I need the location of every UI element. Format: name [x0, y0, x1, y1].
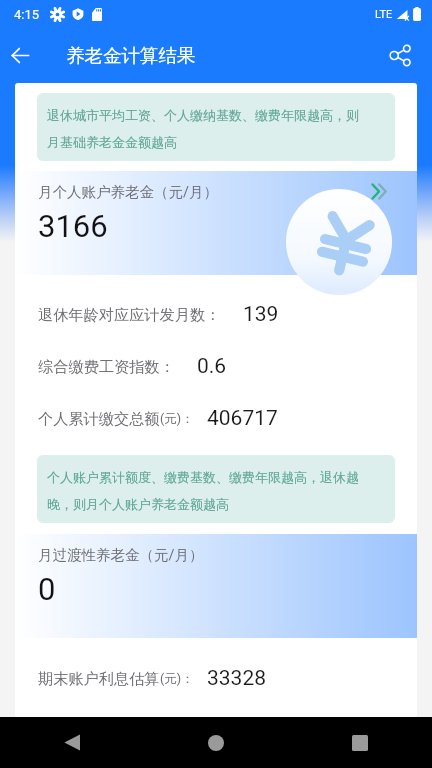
staticText: 个人累计缴交总额	[38, 409, 160, 428]
staticText: 139	[243, 302, 279, 327]
button[interactable]: 综合缴费工资指数：	[15, 340, 417, 392]
staticText: 退休城市平均工资、个人缴纳基数、缴费年限越高，则月基础养老金金额越高	[47, 100, 371, 154]
staticText: 4:15	[14, 7, 40, 22]
staticText: 养老金计算结果	[66, 44, 196, 67]
button[interactable]: Home	[144, 717, 288, 768]
staticText: (元)：	[160, 671, 194, 687]
staticText: 月过渡性养老金（元/月）	[38, 546, 204, 564]
button[interactable]: 月过渡性养老金（元/月）	[15, 534, 417, 638]
button[interactable]: 期末账户利息估算	[15, 652, 417, 704]
staticText: LTE	[375, 8, 393, 21]
button[interactable]: Back	[0, 717, 144, 768]
staticText: 3166	[38, 208, 108, 244]
button[interactable]: 退休年龄对应应计发月数：	[15, 288, 417, 340]
staticText: 综合缴费工资指数：	[38, 357, 175, 376]
button[interactable]: Share	[380, 28, 420, 83]
button[interactable]: 个人累计缴交总额	[15, 392, 417, 444]
staticText: 月个人账户养老金（元/月）	[38, 183, 218, 201]
button[interactable]: Recent apps	[288, 717, 432, 768]
staticText: 期末账户利息估算	[38, 669, 160, 688]
staticText: 退休年龄对应应计发月数：	[38, 305, 221, 324]
button[interactable]: Back	[2, 28, 38, 83]
staticText: 33328	[207, 666, 267, 691]
staticText: 0.6	[197, 354, 227, 379]
staticText: 个人账户累计额度、缴费基数、缴费年限越高，退休越晚，则月个人账户养老金额越高	[47, 462, 371, 516]
staticText: 406717	[207, 406, 278, 431]
staticText: 0	[38, 571, 56, 607]
staticText: (元)：	[160, 411, 194, 427]
button[interactable]: 月个人账户养老金（元/月）	[15, 171, 417, 275]
